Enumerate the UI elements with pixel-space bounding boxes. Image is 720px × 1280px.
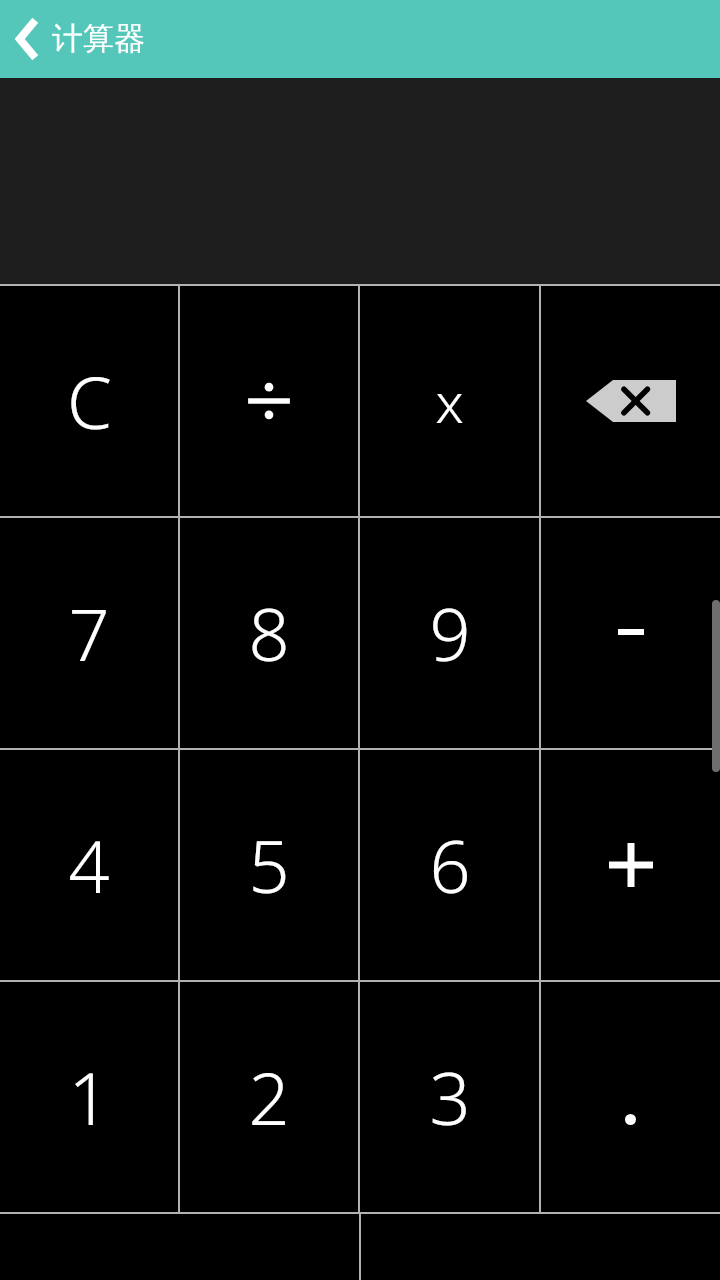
button[interactable]: 3: [360, 982, 539, 1212]
button[interactable]: Plus: [541, 750, 720, 980]
staticText: 3: [429, 1048, 471, 1146]
button[interactable]: 2: [180, 982, 358, 1212]
button[interactable]: 5: [180, 750, 358, 980]
button[interactable]: 4: [0, 750, 178, 980]
staticText: 6: [429, 816, 471, 914]
button[interactable]: Back: [0, 11, 56, 67]
staticText: x: [435, 363, 464, 439]
button[interactable]: 7: [0, 518, 178, 748]
button[interactable]: C: [0, 286, 178, 516]
button[interactable]: x: [360, 286, 539, 516]
button[interactable]: 9: [360, 518, 539, 748]
staticText: 2: [248, 1048, 290, 1146]
staticText: C: [67, 352, 112, 450]
button[interactable]: Divide: [180, 286, 358, 516]
button[interactable]: 6: [360, 750, 539, 980]
staticText: 1: [68, 1048, 110, 1146]
staticText: 4: [68, 816, 110, 914]
staticText: 计算器: [52, 19, 145, 58]
staticText: 9: [429, 584, 471, 682]
button[interactable]: 1: [0, 982, 178, 1212]
staticText: 7: [68, 584, 110, 682]
button[interactable]: Decimal point: [541, 982, 720, 1212]
staticText: 8: [248, 584, 290, 682]
button[interactable]: Minus: [541, 518, 720, 748]
button[interactable]: Backspace: [541, 286, 720, 516]
button[interactable]: 8: [180, 518, 358, 748]
staticText: 5: [248, 816, 290, 914]
